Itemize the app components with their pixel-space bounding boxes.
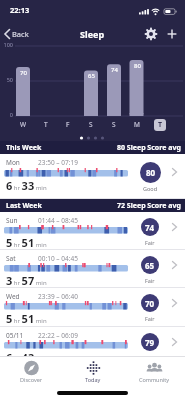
staticText: 22:22 – 06:09: [38, 331, 78, 340]
staticText: Wed: [6, 292, 20, 301]
button[interactable]: Today: [62, 356, 124, 390]
staticText: 5 hr 51 min: [6, 235, 47, 250]
button[interactable]: 05/11: [0, 327, 185, 366]
button[interactable]: Discover: [0, 356, 62, 390]
staticText: 0: [9, 111, 13, 118]
staticText: This Week: [6, 143, 42, 153]
staticText: Sleep: [80, 28, 105, 40]
button[interactable]: Community: [124, 356, 185, 390]
staticText: 6 hr 43 min: [6, 350, 47, 365]
staticText: 74: [145, 222, 155, 233]
staticText: S: [89, 120, 93, 129]
staticText: 74: [111, 66, 118, 74]
staticText: 00:10 – 04:45: [38, 254, 78, 263]
staticText: Last Week: [6, 201, 42, 211]
staticText: Fair: [145, 239, 155, 246]
staticText: 6 hr 33 min: [6, 178, 47, 193]
staticText: T: [158, 120, 163, 130]
staticText: 80: [134, 62, 141, 70]
staticText: Fair: [145, 277, 155, 284]
staticText: Good: [143, 185, 158, 192]
staticText: 65: [145, 260, 155, 271]
staticText: M: [134, 120, 140, 129]
staticText: Fair: [145, 315, 155, 322]
staticText: Today: [85, 376, 101, 383]
staticText: W: [20, 120, 27, 129]
button[interactable]: Wed: [0, 288, 185, 327]
button[interactable]: [163, 25, 181, 43]
button[interactable]: [142, 25, 160, 43]
staticText: 01:44 – 08:45: [38, 216, 78, 225]
staticText: 23:39 – 06:40: [38, 292, 78, 301]
staticText: 80: [146, 167, 156, 178]
staticText: 65: [88, 72, 95, 80]
staticText: 70: [145, 298, 155, 309]
staticText: T: [44, 120, 48, 129]
staticText: Community: [139, 376, 170, 383]
staticText: 50: [6, 76, 13, 83]
staticText: 3 hr 57 min: [6, 273, 47, 288]
staticText: 100: [3, 41, 13, 48]
staticText: 72 Sleep Score avg: [117, 201, 181, 211]
staticText: 23:50 – 07:19: [38, 158, 78, 167]
staticText: Back: [12, 29, 29, 39]
staticText: 05/11: [6, 331, 24, 340]
staticText: 5 hr 51 min: [6, 311, 47, 326]
staticText: 80 Sleep Score avg: [117, 143, 181, 153]
button[interactable]: Back: [0, 26, 34, 42]
staticText: Mon: [6, 158, 20, 167]
staticText: 70: [20, 69, 27, 77]
staticText: Sat: [6, 254, 16, 263]
staticText: Fair: [145, 354, 155, 361]
staticText: F: [66, 120, 70, 129]
button[interactable]: Sun: [0, 212, 185, 250]
staticText: 22:13: [10, 5, 30, 15]
staticText: Discover: [20, 376, 43, 383]
staticText: Sun: [6, 216, 18, 225]
button[interactable]: Sat: [0, 250, 185, 288]
staticText: 79: [145, 337, 155, 348]
button[interactable]: Mon: [0, 154, 185, 199]
staticText: S: [112, 120, 116, 129]
